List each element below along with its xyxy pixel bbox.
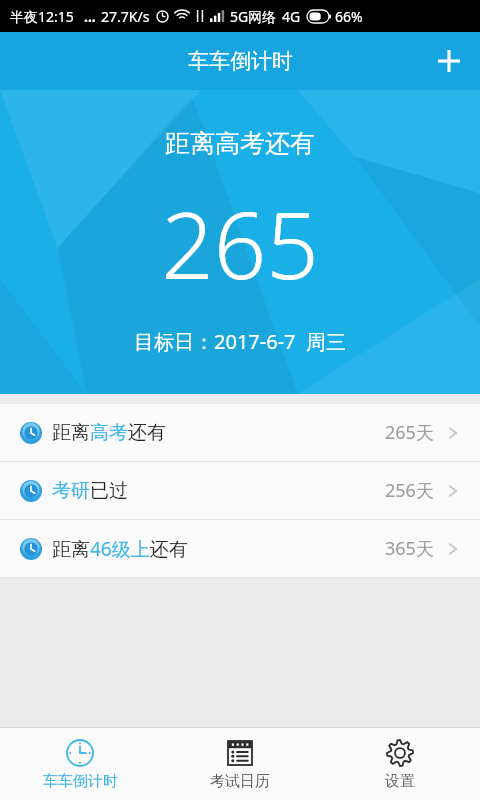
staticText: 目标日：2017-6-7 周三: [134, 328, 346, 355]
staticText: 考试日历: [210, 772, 270, 791]
staticText: 设置: [385, 772, 415, 791]
button[interactable]: 考研已过: [0, 462, 480, 519]
staticText: 265: [161, 181, 319, 306]
staticText: 半夜12:15: [10, 7, 74, 26]
staticText: 距离高考还有: [52, 421, 166, 445]
staticText: 27.7K/s: [101, 7, 150, 26]
staticText: 4G: [282, 7, 301, 26]
button[interactable]: 距离46级上还有: [0, 520, 480, 577]
button[interactable]: 考试日历: [160, 728, 320, 800]
staticText: 265天: [385, 420, 434, 445]
staticText: 车车倒计时: [188, 48, 293, 74]
staticText: ...: [84, 7, 96, 26]
staticText: 距离高考还有: [165, 128, 315, 159]
staticText: 车车倒计时: [43, 772, 118, 791]
staticText: 66%: [335, 7, 363, 26]
staticText: 256天: [385, 478, 434, 503]
button[interactable]: Add countdown: [418, 32, 480, 90]
staticText: 365天: [385, 536, 434, 561]
button[interactable]: 设置: [320, 728, 480, 800]
button[interactable]: 车车倒计时: [0, 728, 160, 800]
button[interactable]: 距离高考还有: [0, 404, 480, 461]
staticText: 距离46级上还有: [52, 536, 188, 562]
staticText: 5G网络: [230, 7, 277, 26]
staticText: 考研已过: [52, 479, 128, 503]
